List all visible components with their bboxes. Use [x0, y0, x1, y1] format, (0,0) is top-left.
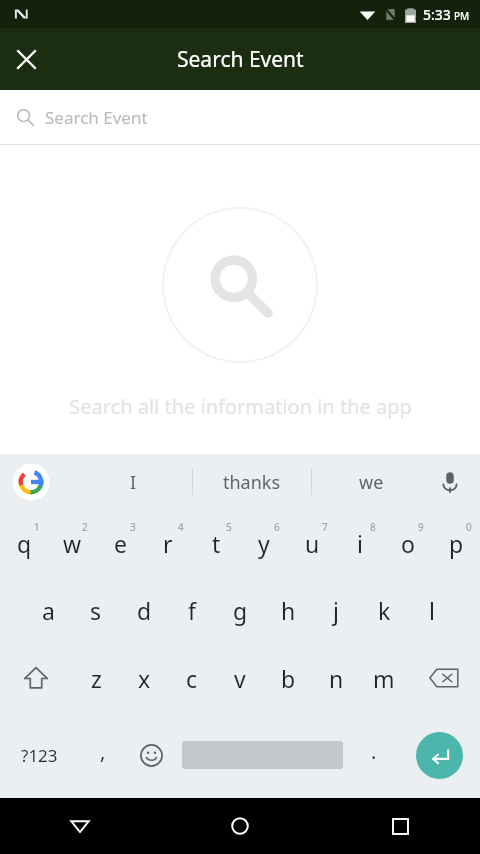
button[interactable]: c	[168, 644, 216, 712]
staticText: 5	[226, 520, 232, 534]
button[interactable]: Backspace	[408, 644, 480, 712]
staticText: Search Event	[45, 106, 148, 129]
staticText: thanks	[223, 470, 281, 495]
button[interactable]: n	[312, 644, 360, 712]
button[interactable]: s	[72, 576, 120, 644]
staticText: d	[137, 595, 152, 626]
button[interactable]: w	[48, 510, 96, 576]
button[interactable]: .	[350, 712, 398, 798]
button[interactable]: Home	[160, 798, 320, 854]
button[interactable]: Back	[0, 798, 160, 854]
staticText: h	[281, 595, 296, 626]
button[interactable]: v	[216, 644, 264, 712]
button[interactable]: ,	[79, 712, 127, 798]
staticText: PM	[454, 9, 470, 23]
staticText: u	[305, 528, 320, 559]
staticText: e	[114, 528, 127, 559]
button[interactable]: thanks	[193, 454, 311, 510]
staticText: Search all the information in the app	[69, 393, 412, 420]
button[interactable]: I	[75, 454, 192, 510]
button[interactable]: Voice input	[430, 462, 470, 502]
button[interactable]: Enter	[398, 712, 480, 798]
button[interactable]: y	[240, 510, 288, 576]
button[interactable]: Shift	[0, 644, 72, 712]
staticText: j	[333, 595, 339, 626]
staticText: p	[449, 528, 464, 559]
button[interactable]: t	[192, 510, 240, 576]
staticText: Search Event	[177, 45, 304, 74]
staticText: g	[233, 595, 248, 626]
staticText: 0	[466, 520, 472, 534]
button[interactable]: b	[264, 644, 312, 712]
staticText: I	[130, 470, 137, 495]
button[interactable]: a	[24, 576, 72, 644]
staticText: 5:33	[423, 5, 451, 24]
button[interactable]: m	[360, 644, 408, 712]
button[interactable]: i	[336, 510, 384, 576]
staticText: 2	[82, 520, 88, 534]
button[interactable]: f	[168, 576, 216, 644]
button[interactable]: Recents	[320, 798, 480, 854]
staticText: 1	[34, 520, 40, 534]
staticText: a	[42, 595, 55, 626]
staticText: r	[163, 528, 173, 559]
button[interactable]: Space	[175, 712, 350, 798]
button[interactable]: l	[408, 576, 456, 644]
staticText: ,	[100, 738, 106, 765]
staticText: 9	[418, 520, 424, 534]
staticText: l	[429, 595, 435, 626]
staticText: o	[401, 528, 415, 559]
button[interactable]: d	[120, 576, 168, 644]
staticText: f	[188, 595, 196, 626]
staticText: 4	[178, 520, 184, 534]
button[interactable]: k	[360, 576, 408, 644]
staticText: i	[357, 528, 363, 559]
button[interactable]: we	[312, 454, 430, 510]
staticText: q	[17, 528, 32, 559]
staticText: t	[212, 528, 221, 559]
button[interactable]: Search Event	[0, 90, 480, 144]
staticText: 8	[370, 520, 376, 534]
button[interactable]: q	[0, 510, 48, 576]
staticText: we	[359, 470, 384, 495]
staticText: n	[329, 663, 344, 694]
button[interactable]: g	[216, 576, 264, 644]
button[interactable]: Emoji	[127, 712, 175, 798]
staticText: b	[281, 663, 296, 694]
button[interactable]: x	[120, 644, 168, 712]
button[interactable]: e	[96, 510, 144, 576]
staticText: y	[258, 528, 270, 559]
staticText: .	[371, 738, 377, 765]
staticText: v	[234, 663, 246, 694]
staticText: c	[186, 663, 198, 694]
button[interactable]: o	[384, 510, 432, 576]
staticText: w	[63, 528, 82, 559]
button[interactable]: u	[288, 510, 336, 576]
staticText: ?123	[21, 744, 58, 767]
staticText: m	[373, 663, 395, 694]
staticText: 3	[130, 520, 136, 534]
button[interactable]: j	[312, 576, 360, 644]
button[interactable]: z	[72, 644, 120, 712]
button[interactable]: ?123	[0, 712, 79, 798]
button[interactable]: r	[144, 510, 192, 576]
staticText: k	[378, 595, 391, 626]
button[interactable]: h	[264, 576, 312, 644]
button[interactable]: Close	[0, 33, 52, 85]
button[interactable]: p	[432, 510, 480, 576]
staticText: 6	[274, 520, 280, 534]
staticText: x	[138, 663, 151, 694]
staticText: 7	[322, 520, 328, 534]
button[interactable]: Google	[12, 463, 50, 501]
staticText: s	[90, 595, 102, 626]
staticText: z	[91, 663, 102, 694]
